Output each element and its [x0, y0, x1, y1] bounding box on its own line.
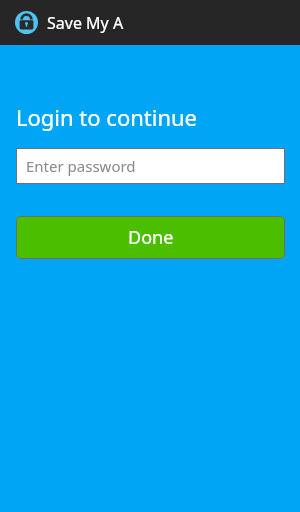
button[interactable]: Enter password	[16, 148, 285, 184]
staticText: Enter password	[26, 156, 136, 176]
button[interactable]: Done	[16, 216, 285, 259]
staticText: Done	[128, 225, 174, 250]
staticText: Login to continue	[16, 102, 198, 132]
staticText: Save My A	[47, 12, 124, 34]
other: App icon, Save My A	[15, 11, 38, 34]
